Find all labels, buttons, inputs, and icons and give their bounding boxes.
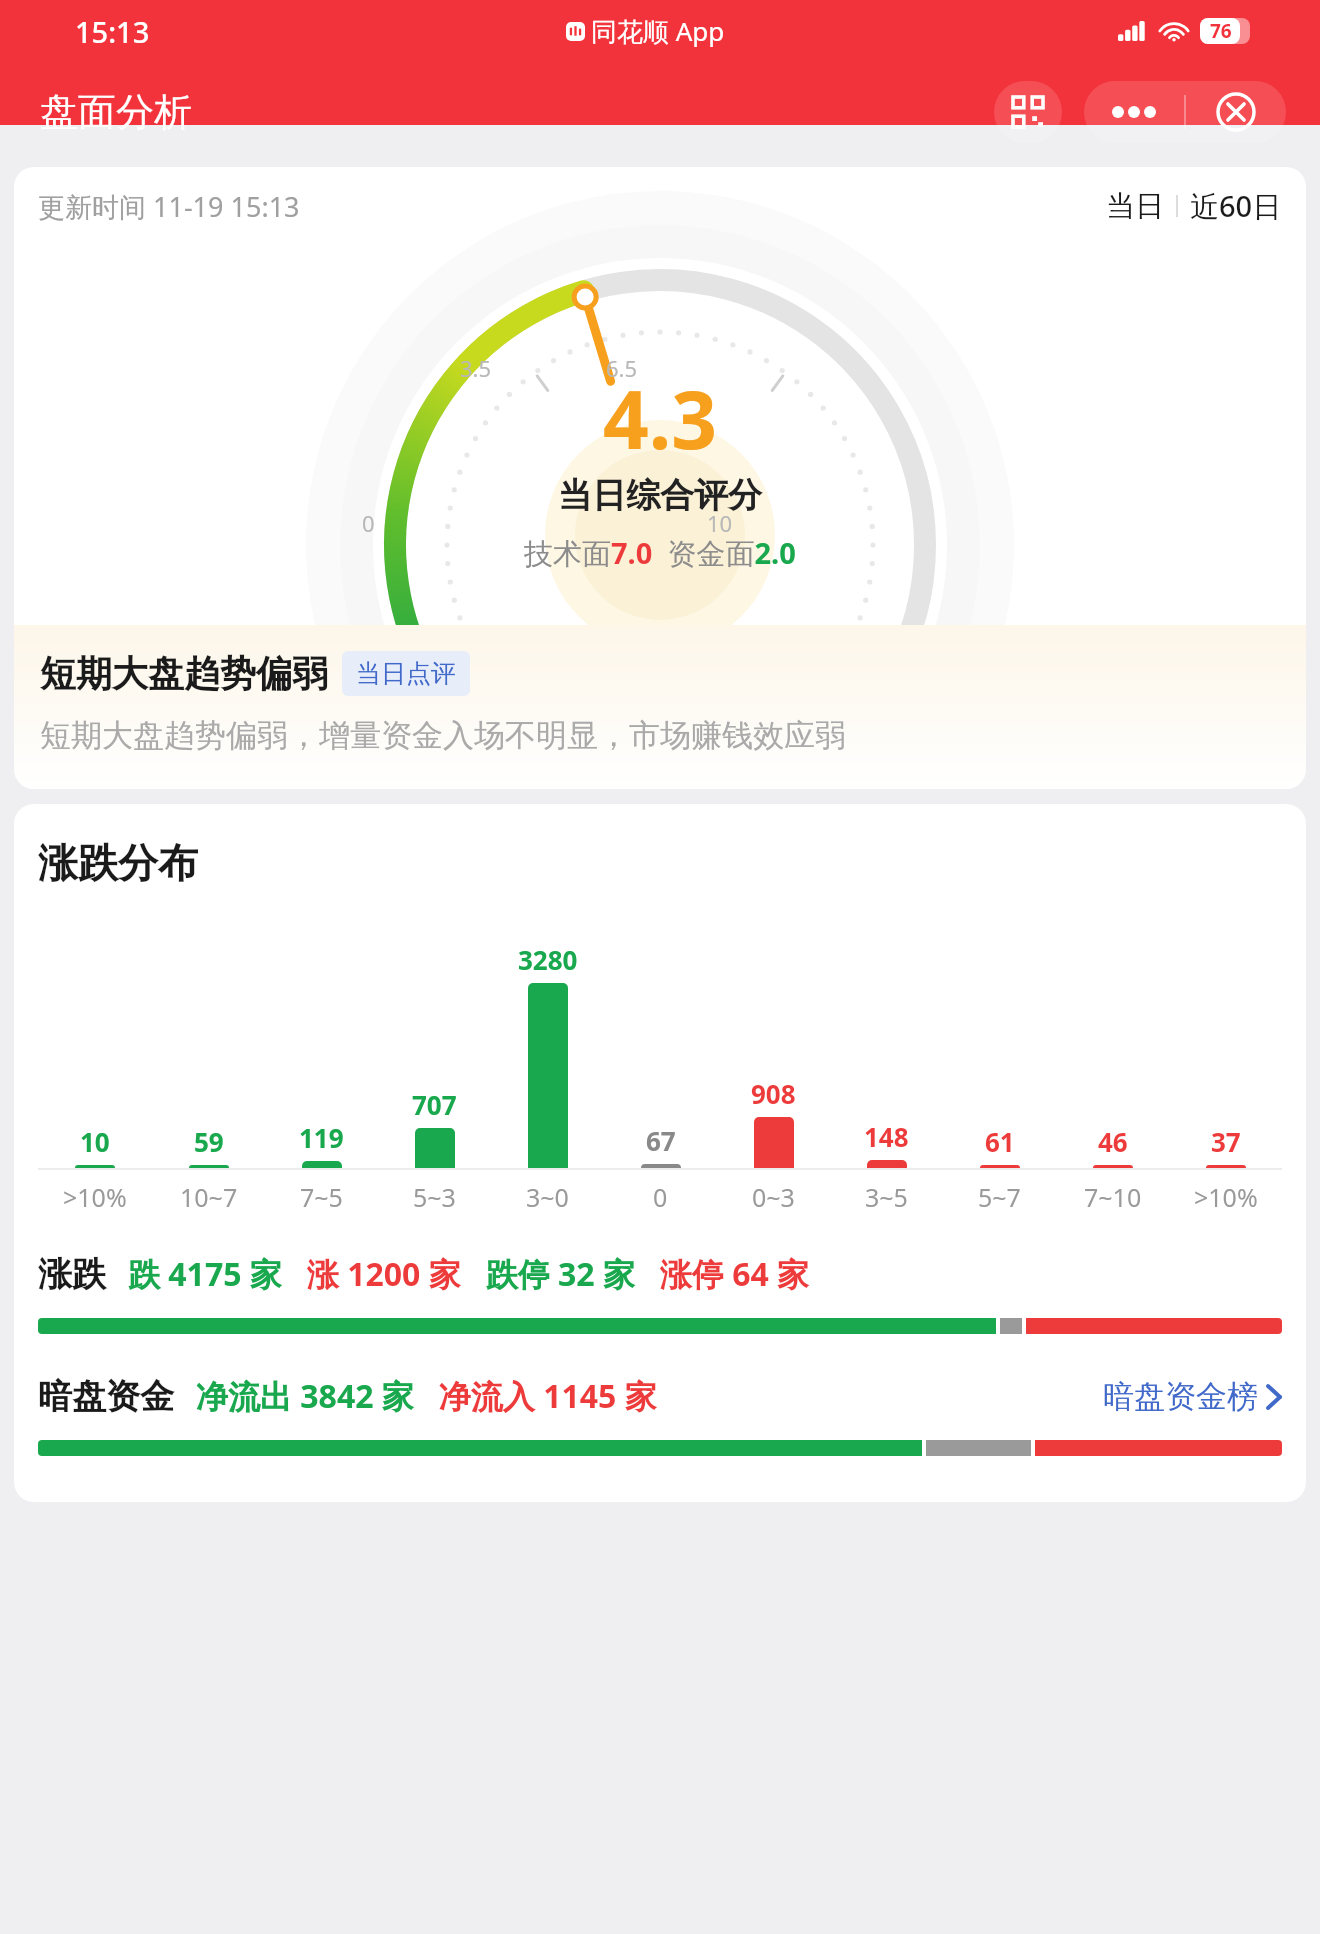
- staticText: 3~0: [526, 1180, 569, 1214]
- button[interactable]: 当日: [1106, 188, 1164, 225]
- staticText: 10: [80, 1124, 110, 1159]
- staticText: 3280: [518, 942, 578, 977]
- staticText: 短期大盘趋势偏弱，增量资金入场不明显，市场赚钱效应弱: [40, 716, 846, 755]
- staticText: 76: [1210, 18, 1232, 44]
- staticText: 当日点评: [356, 658, 456, 689]
- staticText: 5~3: [413, 1180, 456, 1214]
- staticText: 暗盘资金榜: [1103, 1377, 1258, 1416]
- staticText: 0~3: [752, 1180, 795, 1214]
- staticText: 61: [985, 1124, 1015, 1159]
- button[interactable]: Close: [1186, 81, 1286, 143]
- staticText: 0: [653, 1180, 668, 1214]
- staticText: 技术面7.0 资金面2.0: [524, 533, 796, 573]
- staticText: 同花顺 App: [591, 13, 725, 49]
- staticText: 707: [412, 1087, 457, 1122]
- staticText: >10%: [1194, 1180, 1258, 1214]
- staticText: 涨跌: [38, 1253, 106, 1296]
- staticText: 更新时间 11-19 15:13: [38, 188, 300, 225]
- staticText: 涨跌分布: [38, 838, 198, 888]
- staticText: 4.3: [603, 363, 717, 472]
- button[interactable]: Scan QR code: [994, 81, 1062, 143]
- staticText: 148: [864, 1119, 909, 1154]
- staticText: 短期大盘趋势偏弱: [40, 651, 328, 696]
- staticText: 37: [1211, 1124, 1241, 1159]
- staticText: 3~5: [865, 1180, 908, 1214]
- staticText: 10~7: [180, 1180, 238, 1214]
- staticText: 908: [751, 1076, 796, 1111]
- staticText: 59: [194, 1124, 224, 1159]
- staticText: 当日: [1106, 188, 1164, 225]
- staticText: 盘面分析: [40, 88, 192, 136]
- staticText: 近60日: [1190, 186, 1282, 226]
- staticText: 10: [707, 508, 733, 538]
- button[interactable]: More options: [1084, 81, 1184, 143]
- staticText: 0: [362, 508, 375, 538]
- staticText: 67: [646, 1123, 676, 1158]
- staticText: 46: [1098, 1124, 1128, 1159]
- staticText: 5~7: [978, 1180, 1021, 1214]
- staticText: 6.5: [606, 353, 638, 383]
- staticText: 3.5: [460, 353, 492, 383]
- button[interactable]: 暗盘资金榜: [1103, 1377, 1282, 1416]
- staticText: 7~10: [1084, 1180, 1142, 1214]
- staticText: 119: [299, 1120, 344, 1155]
- staticText: 暗盘资金: [38, 1375, 174, 1418]
- button[interactable]: 当日点评: [356, 658, 456, 689]
- staticText: 7~5: [300, 1180, 343, 1214]
- button[interactable]: 近60日: [1190, 186, 1282, 226]
- staticText: 15:13: [75, 12, 150, 51]
- staticText: >10%: [63, 1180, 127, 1214]
- staticText: 净流出 3842 家 净流入 1145 家: [196, 1374, 657, 1418]
- staticText: 跌 4175 家 涨 1200 家 跌停 32 家 涨停 64 家: [128, 1252, 810, 1296]
- staticText: 当日综合评分: [558, 474, 762, 517]
